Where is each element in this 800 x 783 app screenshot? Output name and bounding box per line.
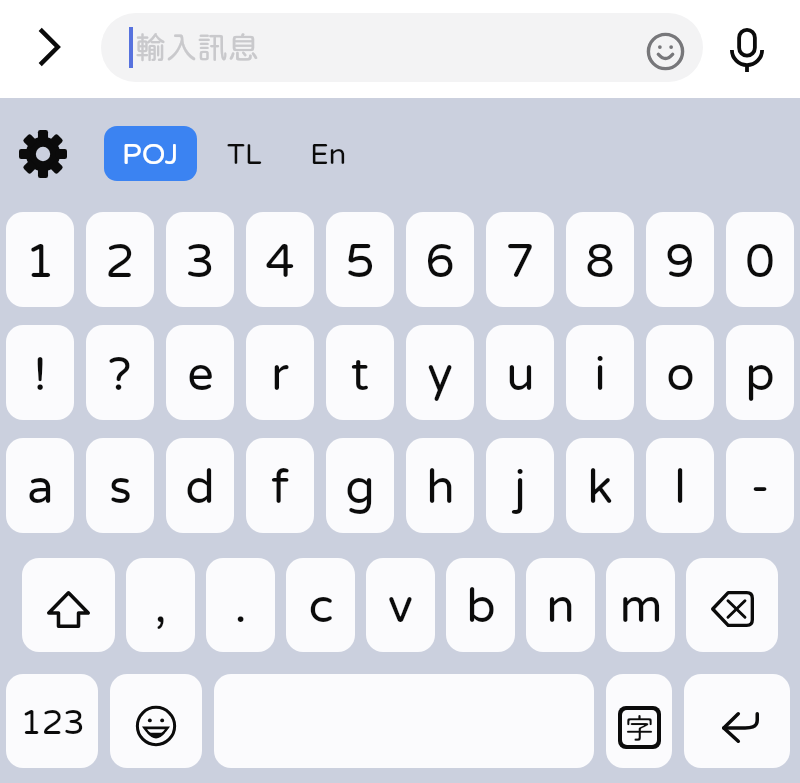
button[interactable]: 6 [406,212,474,307]
staticText: 0 [745,233,775,287]
button[interactable]: Chinese input [606,674,672,768]
button[interactable]: h [406,438,474,533]
button[interactable]: u [486,325,554,420]
staticText: POJ [122,137,179,171]
staticText: 2 [105,233,135,287]
staticText: t [351,346,369,400]
button[interactable]: 9 [646,212,714,307]
button[interactable]: e [166,325,234,420]
staticText: b [466,578,496,632]
button[interactable]: j [486,438,554,533]
staticText: l [674,459,686,513]
button[interactable]: Settings [12,123,74,185]
button[interactable]: d [166,438,234,533]
button[interactable]: o [646,325,714,420]
staticText: o [666,346,695,400]
staticText: 123 [20,702,85,741]
button[interactable]: Backspace [686,558,778,652]
button[interactable]: m [606,558,675,652]
button[interactable]: POJ [104,126,197,181]
staticText: c [308,578,334,632]
button[interactable]: 8 [566,212,634,307]
button[interactable]: 輸入訊息 [101,13,703,82]
button[interactable]: 123 [6,674,98,768]
staticText: 3 [185,233,215,287]
staticText: - [750,459,770,513]
button[interactable]: Enter [684,674,790,768]
button[interactable]: 3 [166,212,234,307]
button[interactable]: 5 [326,212,394,307]
button[interactable]: v [366,558,435,652]
staticText: k [587,459,613,513]
staticText: j [514,459,526,513]
button[interactable]: a [6,438,74,533]
button[interactable]: 1 [6,212,74,307]
staticText: u [506,346,535,400]
button[interactable]: f [246,438,314,533]
button[interactable]: 0 [726,212,794,307]
button[interactable]: t [326,325,394,420]
staticText: y [427,346,453,400]
button[interactable]: Voice input [717,20,777,80]
staticText: , [154,578,167,632]
staticText: 輸入訊息 [135,30,259,65]
button[interactable]: , [126,558,195,652]
button[interactable]: l [646,438,714,533]
button[interactable]: r [246,325,314,420]
button[interactable]: Emoji [638,21,692,75]
staticText: e [187,346,214,400]
button[interactable]: - [726,438,794,533]
staticText: g [345,459,375,513]
button[interactable]: i [566,325,634,420]
button[interactable]: . [206,558,275,652]
button[interactable]: p [726,325,794,420]
staticText: 6 [425,233,455,287]
staticText: i [594,346,606,400]
staticText: d [185,459,215,513]
staticText: 5 [345,233,375,287]
button[interactable]: 7 [486,212,554,307]
button[interactable]: ? [86,325,154,420]
button[interactable]: b [446,558,515,652]
staticText: . [234,578,247,632]
button[interactable]: TL [213,126,275,181]
staticText: ? [108,346,132,400]
button[interactable]: c [286,558,355,652]
button[interactable]: ! [6,325,74,420]
button[interactable]: Expand toolbar [18,16,80,78]
staticText: 7 [505,233,535,287]
staticText: 字 [625,712,655,744]
button[interactable]: En [297,126,359,181]
staticText: 4 [265,233,295,287]
button[interactable]: 4 [246,212,314,307]
staticText: ! [33,346,47,400]
staticText: h [426,459,455,513]
staticText: En [310,137,347,171]
staticText: n [546,578,575,632]
staticText: p [745,346,775,400]
staticText: 8 [585,233,615,287]
button[interactable]: Space [214,674,594,768]
staticText: s [109,459,132,513]
staticText: 9 [665,233,695,287]
button[interactable]: n [526,558,595,652]
staticText: TL [227,137,262,171]
button[interactable]: y [406,325,474,420]
button[interactable]: s [86,438,154,533]
button[interactable]: Emoji keyboard [110,674,202,768]
button[interactable]: Shift [22,558,115,652]
staticText: v [388,578,413,632]
staticText: m [619,578,663,632]
button[interactable]: k [566,438,634,533]
staticText: 1 [25,233,55,287]
button[interactable]: 2 [86,212,154,307]
button[interactable]: g [326,438,394,533]
staticText: a [27,459,54,513]
staticText: f [271,459,289,513]
staticText: r [271,346,289,400]
